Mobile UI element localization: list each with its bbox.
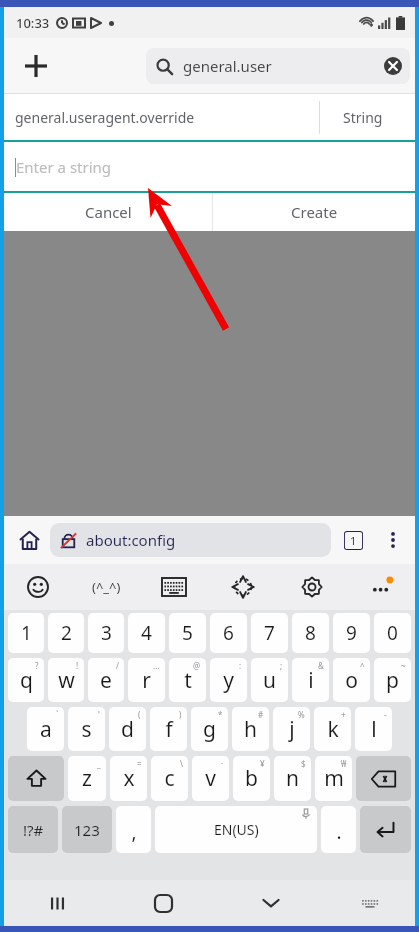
- button[interactable]: Shift: [8, 756, 64, 801]
- button[interactable]: Enter: [360, 806, 411, 853]
- button[interactable]: ^: [333, 658, 370, 702]
- button[interactable]: 3: [88, 613, 124, 653]
- button[interactable]: More options: [375, 522, 411, 558]
- button[interactable]: ?: [8, 658, 44, 702]
- button[interactable]: ,: [116, 806, 151, 853]
- button[interactable]: $: [274, 756, 311, 801]
- button[interactable]: .: [321, 806, 356, 853]
- staticText: $: [301, 758, 306, 769]
- staticText: 4: [141, 620, 152, 646]
- button[interactable]: Clear: [378, 51, 408, 81]
- button[interactable]: general.useragent.override: [4, 94, 415, 140]
- button[interactable]: Add: [12, 42, 60, 90]
- staticText: ;: [280, 660, 283, 671]
- button[interactable]: !: [48, 658, 84, 702]
- staticText: p: [386, 666, 399, 695]
- button[interactable]: 4: [128, 613, 165, 653]
- button[interactable]: %: [273, 707, 310, 751]
- staticText: 2: [61, 620, 72, 646]
- staticText: y: [223, 666, 234, 695]
- button[interactable]: 0: [374, 613, 411, 653]
- button[interactable]: 1: [8, 613, 44, 653]
- button[interactable]: ·: [192, 756, 229, 801]
- staticText: k: [327, 715, 339, 744]
- staticText: String: [343, 108, 383, 127]
- button[interactable]: 8: [292, 613, 329, 653]
- button[interactable]: ~: [374, 658, 411, 702]
- button[interactable]: 123: [62, 806, 112, 853]
- staticText: o: [345, 666, 358, 695]
- button[interactable]: Tabs: 1: [334, 521, 372, 559]
- staticText: Create: [291, 202, 338, 222]
- staticText: about:config: [86, 530, 176, 550]
- staticText: ·: [221, 758, 224, 769]
- staticText: d: [121, 715, 134, 744]
- button[interactable]: Keyboard switcher: [324, 880, 415, 926]
- button[interactable]: @: [169, 658, 206, 702]
- button[interactable]: 5: [169, 613, 206, 653]
- staticText: c: [164, 764, 175, 793]
- button[interactable]: ...: [128, 658, 165, 702]
- staticText: h: [244, 715, 257, 744]
- staticText: g: [203, 715, 216, 744]
- button[interactable]: More: [346, 564, 415, 610]
- button[interactable]: -: [355, 707, 392, 751]
- button[interactable]: 9: [333, 613, 370, 653]
- button[interactable]: Home: [8, 519, 50, 561]
- staticText: v: [205, 764, 216, 793]
- button[interactable]: \: [151, 756, 188, 801]
- staticText: =: [137, 758, 142, 769]
- button[interactable]: Recents: [4, 880, 110, 926]
- button[interactable]: 6: [210, 613, 247, 653]
- button[interactable]: =: [110, 756, 147, 801]
- staticText: ?: [35, 660, 39, 671]
- button[interactable]: Kaomoji: [72, 564, 140, 610]
- button[interactable]: _: [68, 756, 106, 801]
- button[interactable]: Backspace: [356, 756, 411, 801]
- staticText: general.useragent.override: [15, 108, 319, 127]
- button[interactable]: 2: [48, 613, 84, 653]
- button[interactable]: ': [68, 707, 105, 751]
- button[interactable]: &: [292, 658, 329, 702]
- staticText: 5: [182, 620, 193, 646]
- button[interactable]: ¥: [233, 756, 270, 801]
- button[interactable]: Keyboard layout: [140, 564, 208, 610]
- button[interactable]: 7: [251, 613, 288, 653]
- button[interactable]: Settings: [277, 564, 346, 610]
- button[interactable]: Hide keyboard: [217, 880, 324, 926]
- button[interactable]: Emoji: [4, 564, 72, 610]
- staticText: `: [56, 709, 59, 720]
- staticText: 6: [223, 620, 234, 646]
- staticText: &: [318, 660, 324, 671]
- staticText: %: [298, 709, 305, 720]
- button[interactable]: general.user: [146, 48, 410, 84]
- staticText: +: [341, 709, 346, 720]
- button[interactable]: Home: [110, 880, 217, 926]
- button[interactable]: about:config: [50, 523, 331, 557]
- staticText: (^_^): [92, 578, 121, 596]
- staticText: (: [138, 709, 141, 720]
- staticText: j: [289, 715, 295, 744]
- button[interactable]: (: [109, 707, 146, 751]
- button[interactable]: Move cursor: [208, 564, 277, 610]
- staticText: EN(US): [214, 820, 259, 839]
- staticText: Enter a string: [16, 157, 112, 177]
- button[interactable]: ₩: [315, 756, 352, 801]
- button[interactable]: /: [88, 658, 124, 702]
- button[interactable]: ): [150, 707, 187, 751]
- button[interactable]: #: [232, 707, 269, 751]
- button[interactable]: *: [191, 707, 228, 751]
- button[interactable]: Cancel: [4, 193, 212, 231]
- button[interactable]: +: [314, 707, 351, 751]
- staticText: a: [40, 715, 52, 744]
- button[interactable]: Create: [213, 193, 415, 231]
- staticText: x: [123, 764, 135, 793]
- button[interactable]: ;: [251, 658, 288, 702]
- button[interactable]: :: [210, 658, 247, 702]
- button[interactable]: Enter a string: [4, 142, 415, 191]
- staticText: s: [81, 715, 92, 744]
- staticText: ₩: [341, 758, 347, 769]
- button[interactable]: EN(US): [155, 806, 317, 853]
- button[interactable]: `: [27, 707, 64, 751]
- button[interactable]: !?#: [8, 806, 58, 853]
